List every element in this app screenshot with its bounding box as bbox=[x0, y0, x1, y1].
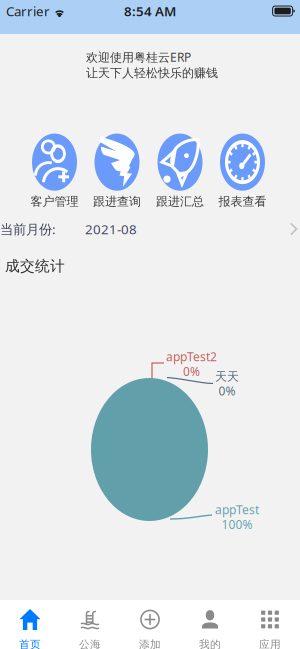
staticText: 让天下人轻松快乐的赚钱 bbox=[86, 66, 218, 80]
staticText: 当前月份: bbox=[0, 220, 56, 238]
staticText: appTest2 bbox=[166, 349, 217, 364]
button[interactable]: 客户管理 bbox=[23, 133, 86, 209]
staticText: 首页 bbox=[19, 638, 41, 649]
staticText: 公海 bbox=[79, 638, 101, 649]
staticText: 0% bbox=[183, 363, 200, 379]
staticText: 客户管理 bbox=[30, 194, 78, 209]
button[interactable]: 当前月份: bbox=[0, 214, 298, 244]
staticText: 跟进查询 bbox=[93, 194, 141, 209]
staticText: 0% bbox=[218, 383, 235, 399]
staticText: 我的 bbox=[199, 638, 221, 649]
button[interactable]: 应用 bbox=[240, 600, 300, 649]
staticText: 2021-08 bbox=[85, 220, 137, 238]
staticText: appTest bbox=[215, 502, 259, 517]
staticText: 应用 bbox=[259, 638, 281, 649]
staticText: 跟进汇总 bbox=[156, 194, 204, 209]
button[interactable]: 添加 bbox=[120, 600, 180, 649]
button[interactable]: 跟进汇总 bbox=[149, 133, 211, 209]
staticText: 添加 bbox=[139, 638, 161, 649]
staticText: 100% bbox=[221, 516, 252, 532]
button[interactable]: 公海 bbox=[60, 600, 120, 649]
button[interactable]: 首页 bbox=[0, 600, 60, 649]
button[interactable]: 报表查看 bbox=[211, 133, 274, 209]
staticText: 欢迎使用粤桂云ERP bbox=[86, 49, 191, 65]
staticText: 报表查看 bbox=[218, 194, 266, 209]
button[interactable]: 我的 bbox=[180, 600, 240, 649]
button[interactable]: 跟进查询 bbox=[86, 133, 148, 209]
staticText: 天天 bbox=[215, 369, 239, 384]
staticText: 成交统计 bbox=[5, 257, 65, 275]
staticText: 8:54 AM bbox=[124, 2, 176, 20]
staticText: Carrier bbox=[6, 2, 50, 20]
